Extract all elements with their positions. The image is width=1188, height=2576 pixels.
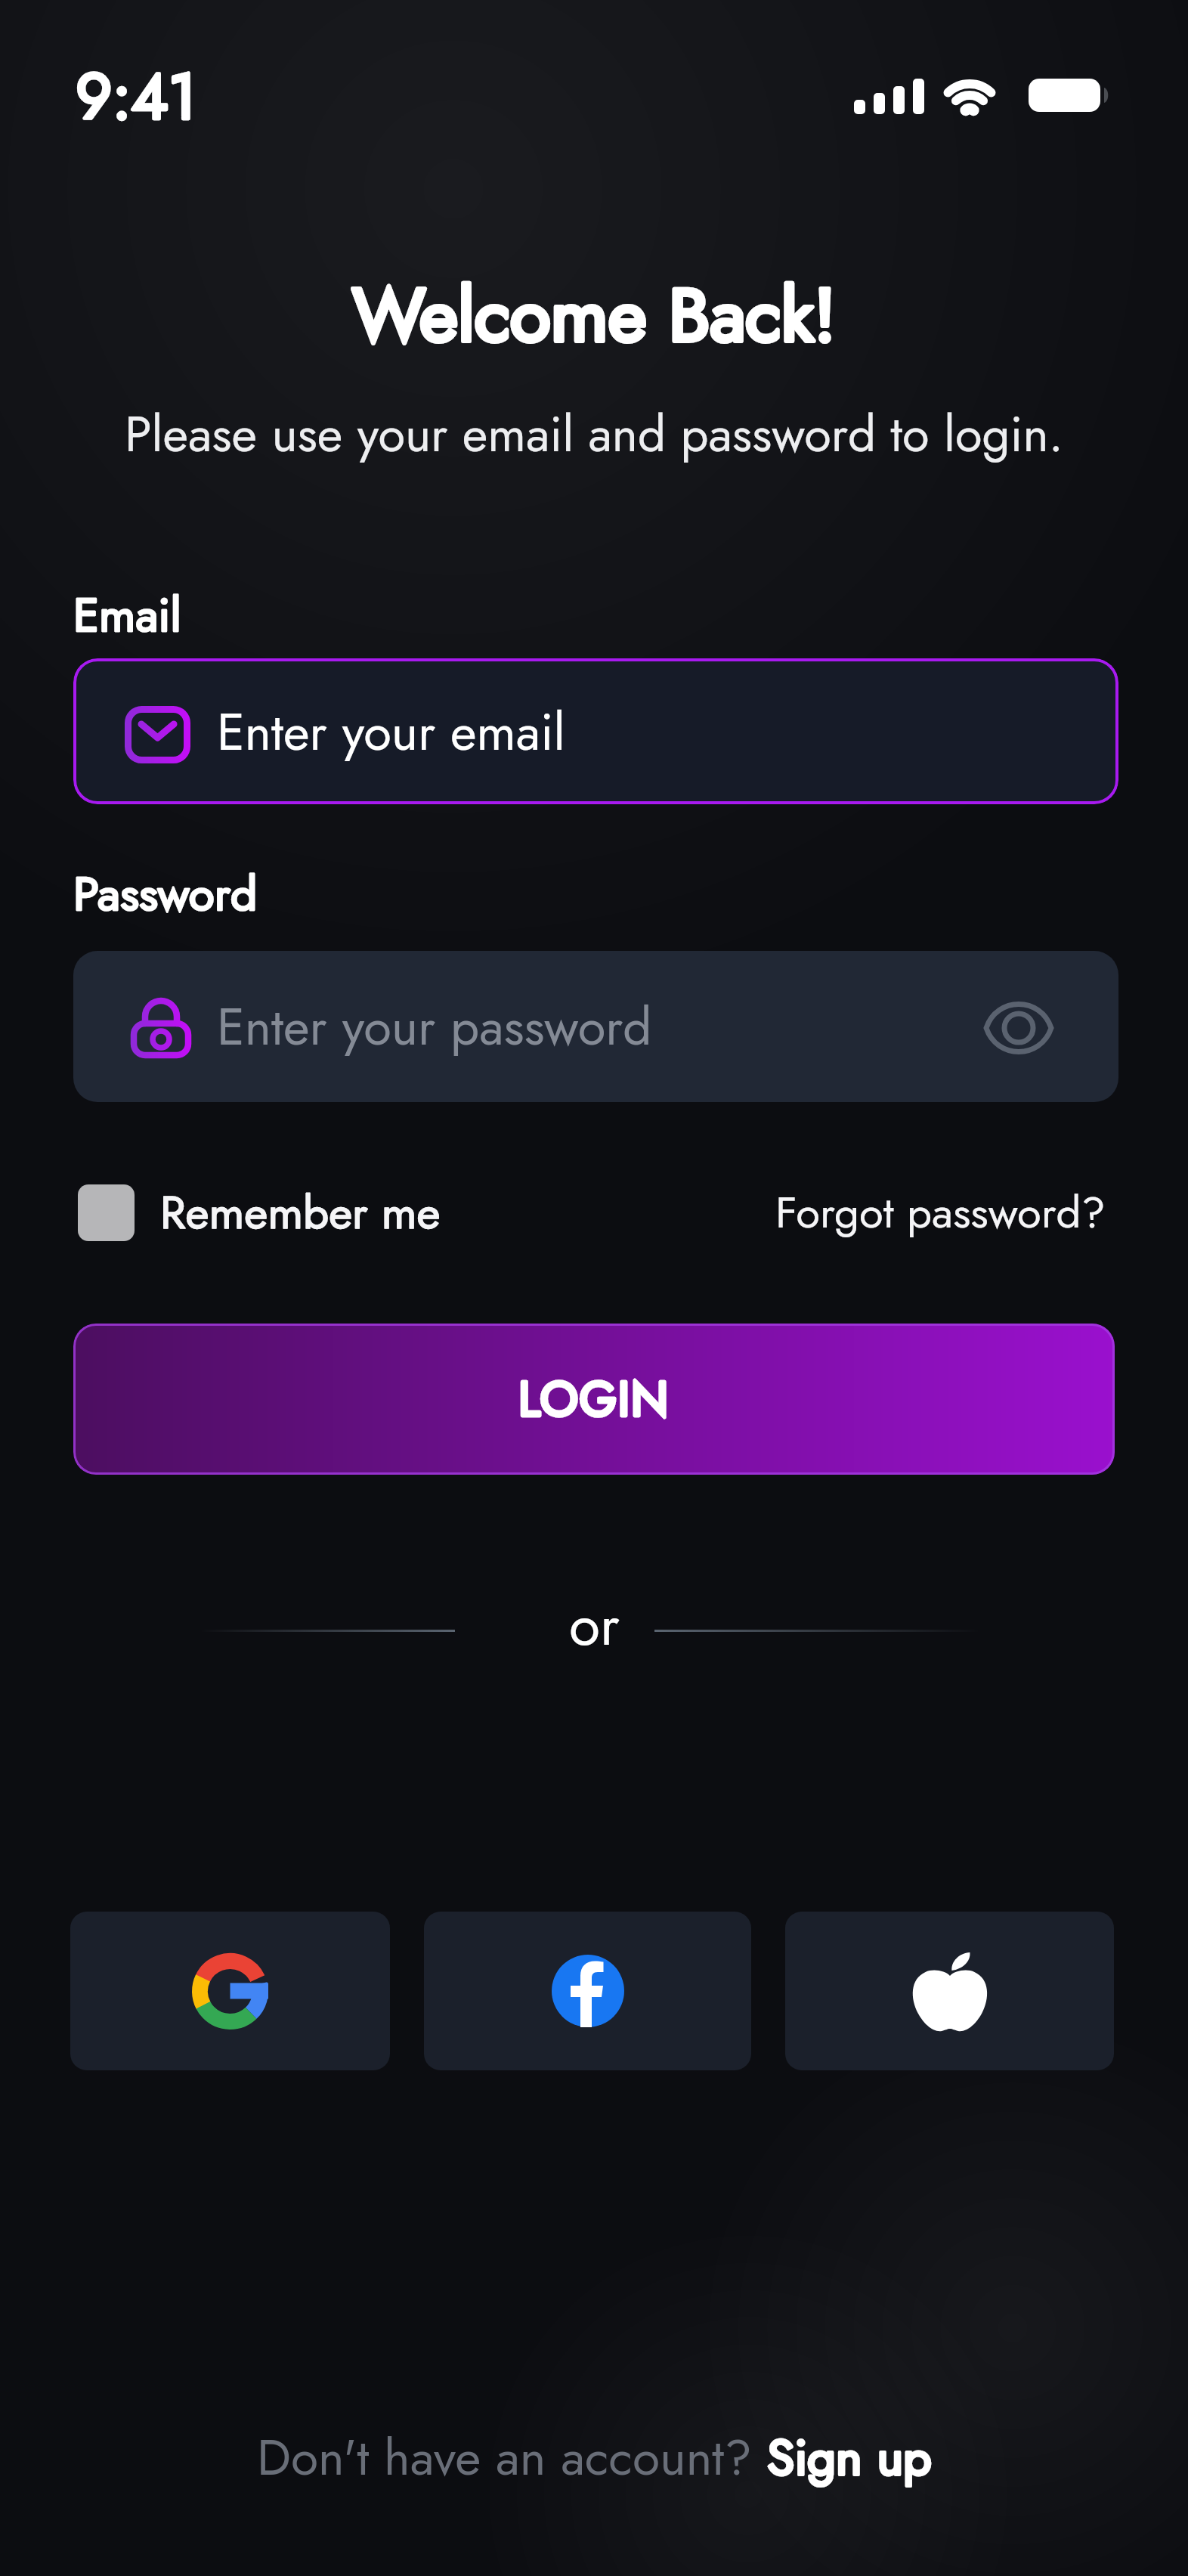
staticText: Password [73,860,258,928]
button[interactable]: LOGIN [73,1324,1115,1475]
button[interactable]: Sign up [767,2421,932,2493]
staticText: Sign up [767,2421,932,2493]
staticText: Don't have an account? [257,2421,767,2493]
staticText: LOGIN [518,1364,670,1434]
staticText: 9:41 [76,51,197,142]
button[interactable] [785,1912,1114,2070]
staticText: LOGIN [518,1364,670,1434]
staticText: 9:41 [76,51,197,142]
button[interactable]: Enter your password [73,951,1118,1102]
staticText: Welcome Back! [352,262,837,369]
button[interactable]: Forgot password? [775,1181,1106,1244]
staticText: Please use your email and password to lo… [125,398,1064,469]
button[interactable] [70,1912,390,2070]
staticText: Email [73,581,181,649]
button[interactable] [424,1912,751,2070]
button[interactable]: Remember me [78,1180,441,1246]
staticText: Sign up [767,2421,932,2493]
staticText: Enter your password [217,990,652,1064]
staticText: Remember me [160,1180,441,1246]
staticText: Password [73,860,258,928]
staticText: Welcome Back! [352,262,837,369]
button[interactable] [985,1001,1053,1055]
staticText: Email [73,581,181,649]
staticText: Remember me [160,1180,441,1246]
button[interactable]: Enter your email [73,658,1118,804]
staticText: or [569,1584,620,1666]
staticText: Enter your email [217,695,565,769]
staticText: Forgot password? [775,1181,1106,1244]
